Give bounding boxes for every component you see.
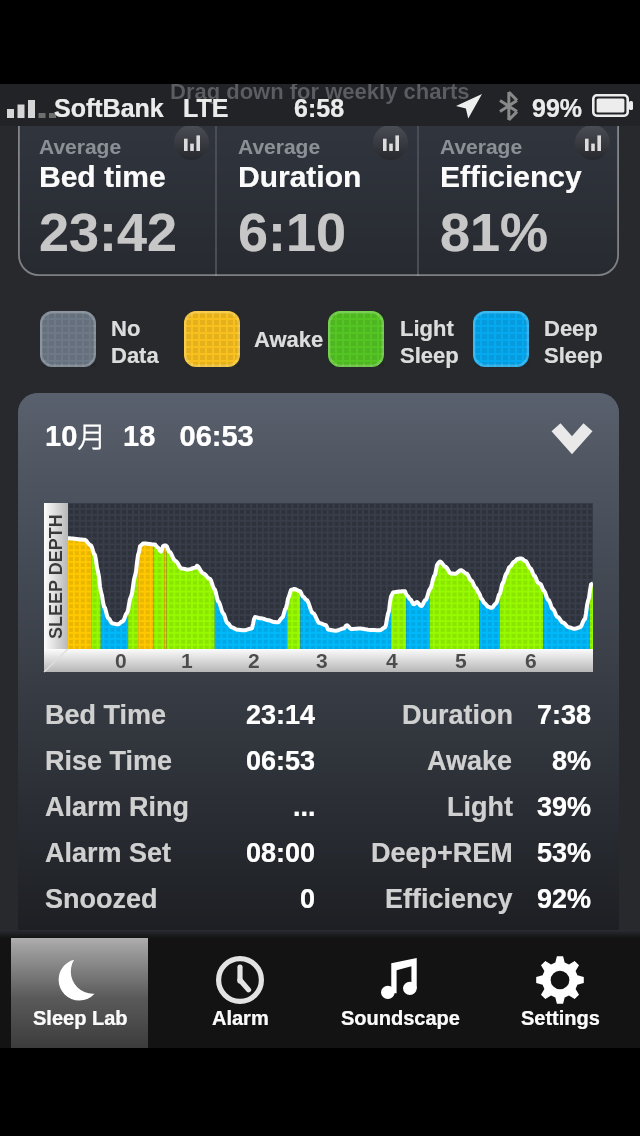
staticText: 0 [115,649,127,672]
staticText: Data [111,343,159,368]
staticText: 1 [181,649,193,672]
staticText: 2 [248,649,260,672]
staticText: Alarm Set [45,838,172,868]
staticText: 99% [532,94,583,122]
staticText: 6:58 [294,94,345,122]
staticText: Light [447,792,513,822]
staticText: 53% [537,838,592,868]
staticText: Average [238,135,321,158]
staticText: Awake [427,746,513,776]
staticText: Sleep [544,343,603,368]
button[interactable]: No [40,311,197,367]
staticText: 23:42 [39,202,178,262]
staticText: 4 [386,649,398,672]
staticText: Average [39,135,122,158]
button[interactable]: Average [419,84,619,276]
staticText: 08:00 [246,838,316,868]
other: Bluetooth [500,92,517,120]
staticText: Efficiency [440,160,582,194]
staticText: Settings [521,1007,600,1029]
staticText: Average [440,135,523,158]
staticText: Alarm Ring [45,792,190,822]
button[interactable]: Settings [480,930,640,1048]
staticText: 5 [455,649,467,672]
staticText: 6:10 [238,202,347,262]
button[interactable]: Average [18,84,215,276]
staticText: SoftBank [54,94,164,122]
staticText: Bed time [39,160,166,194]
staticText: 3 [316,649,328,672]
staticText: No [111,316,141,341]
button[interactable]: Soundscape [320,930,480,1048]
staticText: Snoozed [45,884,158,914]
button[interactable]: Light [328,311,486,367]
staticText: Bed Time [45,700,167,730]
staticText: LTE [183,94,229,122]
button[interactable]: 10 [18,393,619,477]
button[interactable]: Average [217,84,417,276]
staticText: 6 [525,649,537,672]
staticText: Deep [544,316,598,341]
staticText: Duration [402,700,513,730]
button[interactable]: Deep [473,311,630,367]
button[interactable]: Weekly charts [575,125,610,160]
staticText: 06:53 [246,746,316,776]
button[interactable]: Sleep Lab [0,930,160,1048]
staticText: 92% [537,884,592,914]
staticText: 7:38 [537,700,592,730]
other: Expand [553,425,591,447]
staticText: 23:14 [246,700,316,730]
staticText: 0 [300,884,316,914]
staticText: Drag down for weekly charts [170,84,470,104]
staticText: Awake [254,327,324,352]
staticText: Sleep Lab [33,1007,128,1029]
staticText: Rise Time [45,746,173,776]
staticText: Duration [238,160,362,194]
button[interactable]: Weekly charts [174,125,209,160]
staticText: 月 [78,415,107,456]
staticText: Deep+REM [371,838,513,868]
staticText: 81% [440,202,549,262]
staticText: ... [293,792,316,822]
button[interactable]: Weekly charts [373,125,408,160]
staticText: 39% [537,792,592,822]
staticText: 10 [45,420,78,452]
staticText: 18 06:53 [107,420,254,452]
button[interactable]: Awake [184,311,340,367]
staticText: Soundscape [341,1007,460,1029]
button[interactable]: Alarm [160,930,320,1048]
staticText: SLEEP DEPTH [46,514,66,639]
other: Location [456,93,482,119]
staticText: Sleep [400,343,459,368]
staticText: Light [400,316,454,341]
staticText: 8% [552,746,592,776]
staticText: Efficiency [385,884,513,914]
staticText: Alarm [212,1007,269,1029]
